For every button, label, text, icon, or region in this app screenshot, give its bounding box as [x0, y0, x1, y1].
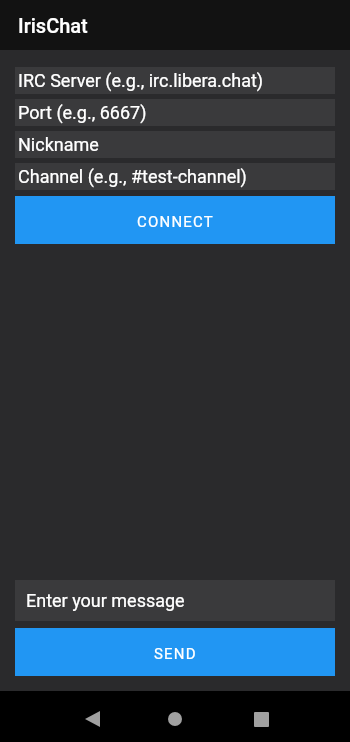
button[interactable]: CONNECT — [15, 196, 335, 244]
button[interactable]: Port (e.g., 6667) — [15, 99, 335, 126]
button[interactable]: Nickname — [15, 131, 335, 158]
button[interactable]: Channel (e.g., #test-channel) — [15, 163, 335, 190]
button[interactable]: Enter your message — [15, 580, 335, 621]
staticText: SEND — [154, 645, 197, 663]
staticText: CONNECT — [137, 213, 214, 231]
button[interactable]: Back — [68, 695, 116, 742]
button[interactable]: Recents — [237, 695, 285, 742]
button[interactable]: IRC Server (e.g., irc.libera.chat) — [15, 67, 335, 94]
staticText: IrisChat — [18, 14, 88, 37]
staticText: Channel (e.g., #test-channel) — [18, 166, 247, 187]
staticText: Enter your message — [26, 590, 185, 611]
button[interactable]: SEND — [15, 628, 335, 676]
button[interactable]: Home — [151, 695, 199, 742]
staticText: Nickname — [18, 134, 99, 155]
staticText: Port (e.g., 6667) — [18, 102, 147, 123]
staticText: IRC Server (e.g., irc.libera.chat) — [18, 70, 264, 91]
